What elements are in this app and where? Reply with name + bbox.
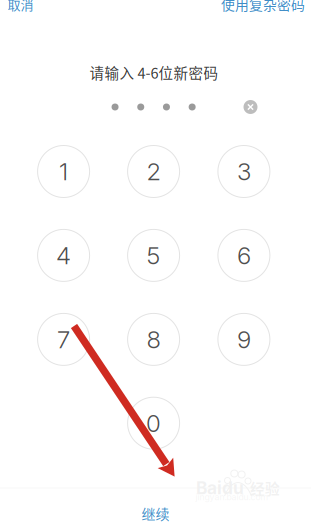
staticText: 请输入 4-6位新密码 bbox=[89, 62, 218, 83]
staticText: 取消 bbox=[7, 0, 33, 13]
button[interactable]: 7 bbox=[38, 313, 90, 365]
staticText: 4 bbox=[56, 241, 71, 270]
staticText: 使用复杂密码 bbox=[221, 0, 305, 14]
staticText: 2 bbox=[147, 157, 161, 186]
button[interactable]: Clear bbox=[243, 100, 257, 114]
button[interactable]: 6 bbox=[218, 229, 270, 281]
button[interactable]: 9 bbox=[218, 313, 270, 365]
button[interactable]: 继续 bbox=[0, 497, 311, 523]
staticText: 0 bbox=[146, 409, 161, 438]
button[interactable]: 2 bbox=[128, 145, 180, 197]
staticText: jingyan.baidu.com bbox=[195, 492, 268, 502]
button[interactable]: 0 bbox=[128, 397, 180, 449]
button[interactable]: 取消 bbox=[7, 0, 33, 13]
staticText: 经验 bbox=[250, 477, 280, 499]
staticText: 3 bbox=[237, 157, 251, 186]
button[interactable]: 使用复杂密码 bbox=[221, 0, 305, 14]
staticText: 8 bbox=[147, 325, 161, 354]
staticText: Baidu bbox=[196, 477, 244, 498]
button[interactable]: 1 bbox=[38, 145, 90, 197]
staticText: 9 bbox=[237, 325, 251, 354]
staticText: 7 bbox=[57, 325, 70, 354]
staticText: 5 bbox=[147, 241, 161, 270]
button[interactable]: 4 bbox=[38, 229, 90, 281]
staticText: 继续 bbox=[141, 503, 169, 523]
staticText: 6 bbox=[237, 241, 251, 270]
button[interactable]: 3 bbox=[218, 145, 270, 197]
button[interactable]: 8 bbox=[128, 313, 180, 365]
button[interactable]: 5 bbox=[128, 229, 180, 281]
staticText: 1 bbox=[59, 157, 68, 186]
